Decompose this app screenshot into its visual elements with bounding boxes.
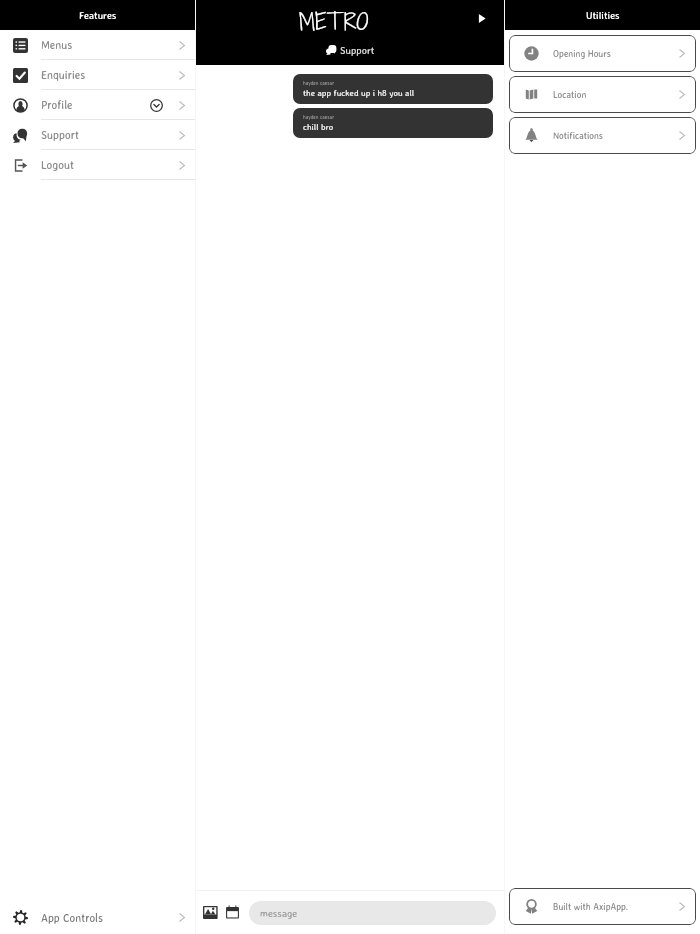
button[interactable]: Opening Hours [509, 35, 696, 72]
button[interactable]: Attach image [202, 904, 219, 921]
staticText: Logout [41, 158, 74, 172]
button[interactable]: Menus [0, 30, 195, 60]
staticText: Utilities [586, 9, 620, 21]
staticText: hayden caesar [303, 80, 335, 86]
staticText: Support [41, 128, 79, 142]
button[interactable]: Notifications [509, 117, 696, 154]
staticText: Built with AxipApp. [553, 901, 629, 912]
staticText: Enquiries [41, 68, 86, 82]
button[interactable]: Location [509, 76, 696, 113]
staticText: Location [553, 89, 587, 100]
staticText: Menus [41, 38, 73, 52]
staticText: chill bro [303, 121, 334, 132]
button[interactable]: hayden caesar [293, 108, 493, 138]
staticText: the app fucked up i h8 you all [303, 87, 415, 98]
staticText: Features [79, 9, 117, 21]
button[interactable]: Calendar [224, 904, 241, 921]
button[interactable]: App Controls [0, 901, 195, 934]
staticText: Opening Hours [553, 48, 611, 59]
staticText: App Controls [41, 911, 104, 925]
staticText: hayden caesar [303, 114, 335, 120]
button[interactable]: Support [0, 120, 195, 150]
staticText: Support [340, 44, 375, 56]
button[interactable]: Profile [0, 90, 195, 120]
button[interactable]: Logout [0, 150, 195, 180]
button[interactable]: hayden caesar [293, 74, 493, 104]
button[interactable]: Next [478, 14, 487, 23]
button[interactable]: Built with AxipApp. [509, 888, 696, 925]
staticText: METRO [299, 5, 369, 37]
staticText: Profile [41, 98, 73, 112]
button[interactable]: message [249, 901, 496, 925]
staticText: message [260, 907, 298, 919]
button[interactable]: Enquiries [0, 60, 195, 90]
staticText: Notifications [553, 130, 603, 141]
